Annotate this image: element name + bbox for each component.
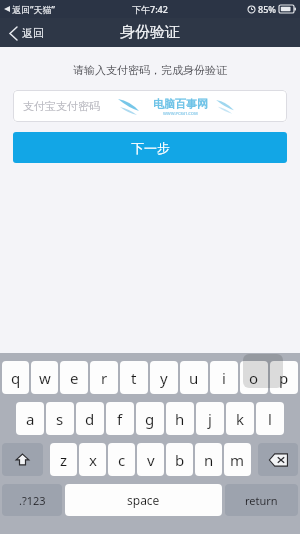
button[interactable]: v	[137, 443, 164, 476]
staticText: y	[160, 368, 168, 388]
staticText: i	[222, 368, 226, 388]
button[interactable]: m	[224, 443, 251, 476]
staticText: p	[279, 368, 289, 388]
button[interactable]: .?123	[2, 484, 62, 516]
button[interactable]: t	[120, 361, 148, 394]
button[interactable]: 支付宝支付密码	[13, 90, 287, 122]
button[interactable]: n	[195, 443, 222, 476]
staticText: x	[89, 450, 97, 470]
staticText: b	[175, 450, 185, 470]
staticText: 下一步	[131, 140, 170, 156]
button[interactable]: Backspace	[258, 443, 298, 476]
staticText: e	[70, 368, 79, 388]
button[interactable]: d	[76, 402, 104, 435]
staticText: n	[204, 450, 214, 470]
button[interactable]: w	[31, 361, 58, 394]
staticText: 身份验证	[120, 23, 180, 42]
button[interactable]: a	[16, 402, 44, 435]
button[interactable]: Shift	[2, 443, 43, 476]
staticText: d	[85, 409, 95, 429]
staticText: m	[230, 450, 245, 470]
button[interactable]: q	[2, 361, 29, 394]
staticText: j	[208, 409, 212, 429]
staticText: space	[127, 492, 160, 508]
staticText: s	[56, 409, 64, 429]
button[interactable]: s	[46, 402, 74, 435]
button[interactable]: i	[210, 361, 238, 394]
staticText: f	[117, 409, 123, 429]
button[interactable]: f	[106, 402, 134, 435]
staticText: t	[131, 368, 137, 388]
button[interactable]: e	[60, 361, 88, 394]
staticText: c	[118, 450, 126, 470]
staticText: k	[236, 409, 245, 429]
staticText: 支付宝支付密码	[23, 99, 100, 113]
staticText: 返回“天猫”	[12, 3, 55, 15]
staticText: q	[11, 368, 21, 388]
button[interactable]: h	[166, 402, 194, 435]
button[interactable]: r	[90, 361, 118, 394]
button[interactable]: 下一步	[13, 132, 287, 163]
staticText: return	[245, 493, 278, 508]
staticText: .?123	[19, 493, 46, 508]
button[interactable]: x	[79, 443, 106, 476]
staticText: w	[39, 368, 51, 388]
staticText: 85%	[258, 3, 276, 15]
button[interactable]: g	[136, 402, 164, 435]
staticText: 下午7:42	[132, 3, 168, 15]
button[interactable]: z	[50, 443, 77, 476]
button[interactable]: o	[240, 361, 268, 394]
staticText: 返回	[22, 26, 44, 40]
button[interactable]: j	[196, 402, 224, 435]
staticText: 请输入支付密码，完成身份验证	[0, 63, 300, 77]
staticText: h	[175, 409, 185, 429]
staticText: l	[268, 409, 272, 429]
staticText: WWW.PC841.COM	[163, 111, 198, 116]
button[interactable]: c	[108, 443, 135, 476]
staticText: g	[145, 409, 155, 429]
staticText: o	[249, 368, 259, 388]
staticText: r	[101, 368, 108, 388]
staticText: 电脑百事网	[153, 97, 208, 111]
button[interactable]: space	[65, 484, 222, 516]
button[interactable]: y	[150, 361, 178, 394]
staticText: u	[189, 368, 199, 388]
button[interactable]: b	[166, 443, 193, 476]
button[interactable]: 返回	[0, 21, 56, 45]
button[interactable]: k	[226, 402, 254, 435]
button[interactable]: p	[270, 361, 298, 394]
staticText: a	[26, 409, 35, 429]
button[interactable]: u	[180, 361, 208, 394]
staticText: z	[60, 450, 68, 470]
button[interactable]: return	[225, 484, 298, 516]
staticText: v	[147, 450, 155, 470]
button[interactable]: l	[256, 402, 284, 435]
